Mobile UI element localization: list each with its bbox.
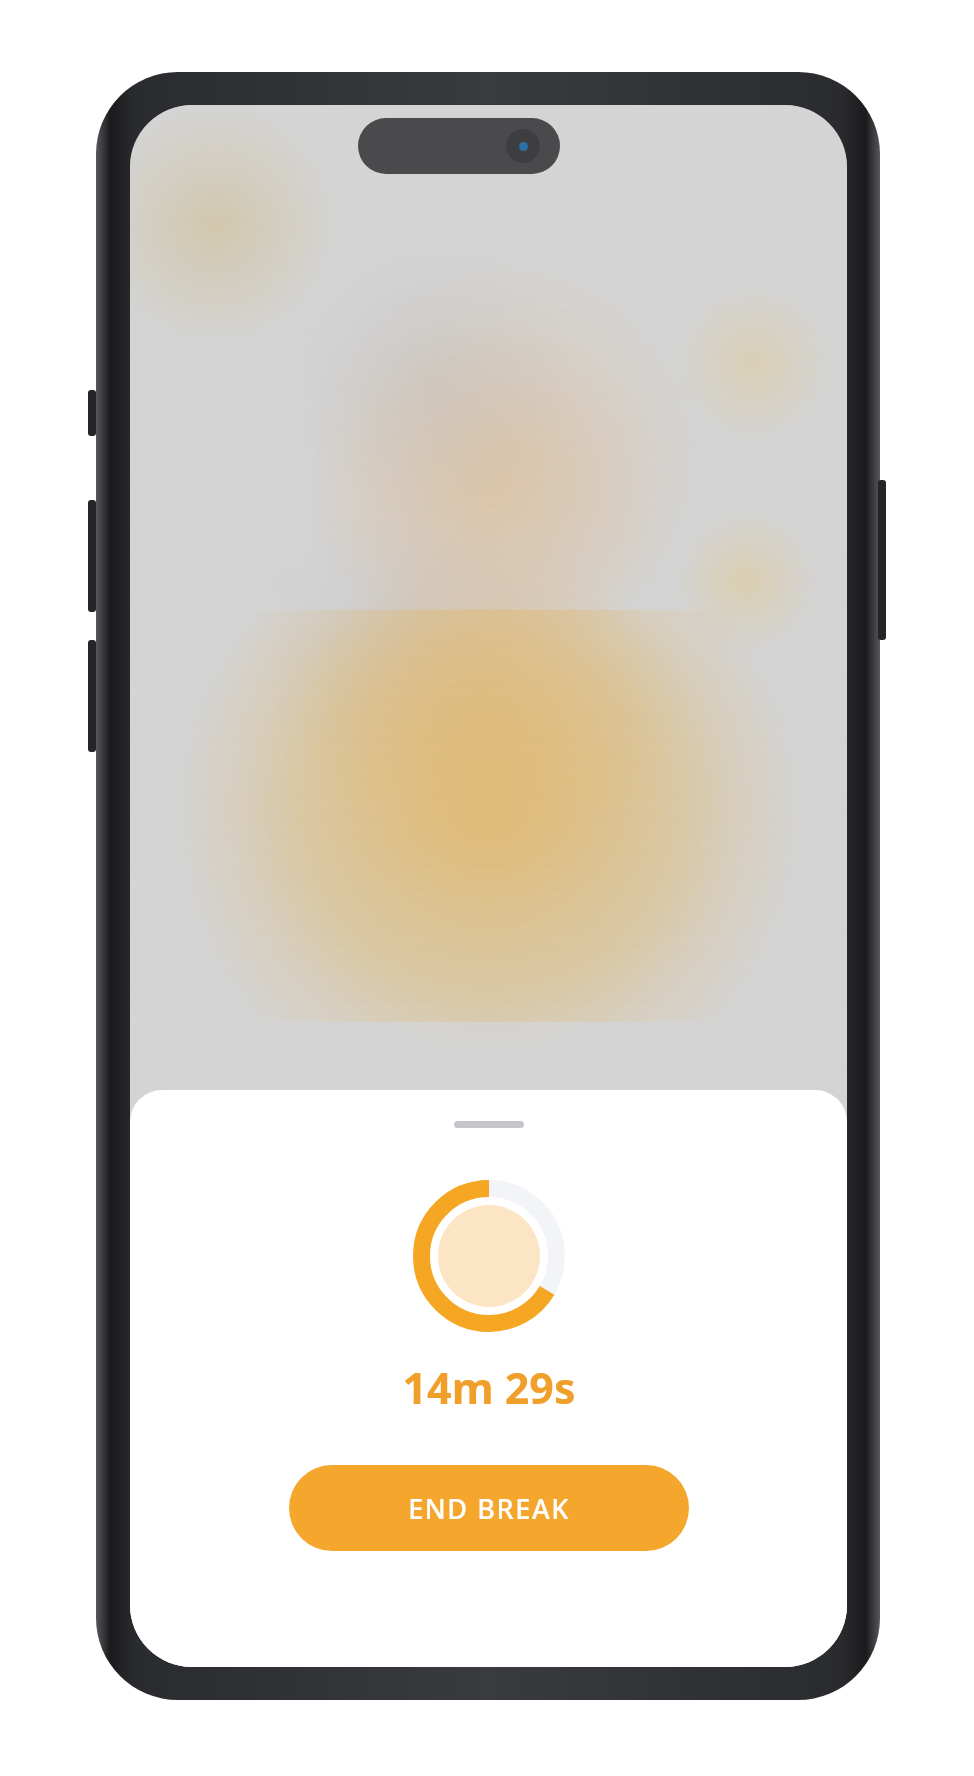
other: Break timer progress: [413, 1180, 565, 1332]
staticText: END BREAK: [408, 1490, 570, 1527]
button[interactable]: [454, 1121, 524, 1128]
button[interactable]: END BREAK: [289, 1465, 689, 1551]
staticText: 14m 29s: [402, 1358, 576, 1417]
